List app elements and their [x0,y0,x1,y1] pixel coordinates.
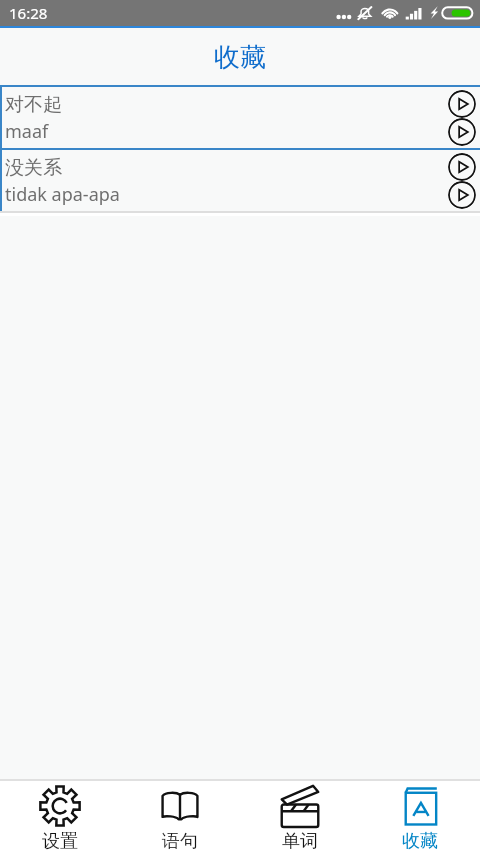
button[interactable]: 对不起 [0,85,480,148]
staticText: maaf [5,119,49,144]
staticText: 没关系 [5,156,62,180]
staticText: 语句 [162,830,198,853]
button[interactable]: Play audio [448,153,476,181]
button[interactable]: 设置 [0,781,120,853]
staticText: 16:28 [9,3,48,23]
staticText: 收藏 [214,41,266,74]
button[interactable]: Play audio [448,181,476,209]
staticText: tidak apa-apa [5,182,120,207]
staticText: 设置 [42,830,78,853]
staticText: 单词 [282,830,318,853]
button[interactable]: 单词 [240,781,360,853]
button[interactable]: Play audio [448,90,476,118]
button[interactable]: Play audio [448,118,476,146]
staticText: 对不起 [5,93,62,117]
staticText: 收藏 [402,830,438,853]
button[interactable]: 语句 [120,781,240,853]
button[interactable]: 没关系 [0,148,480,211]
button[interactable]: 收藏 [360,781,480,853]
